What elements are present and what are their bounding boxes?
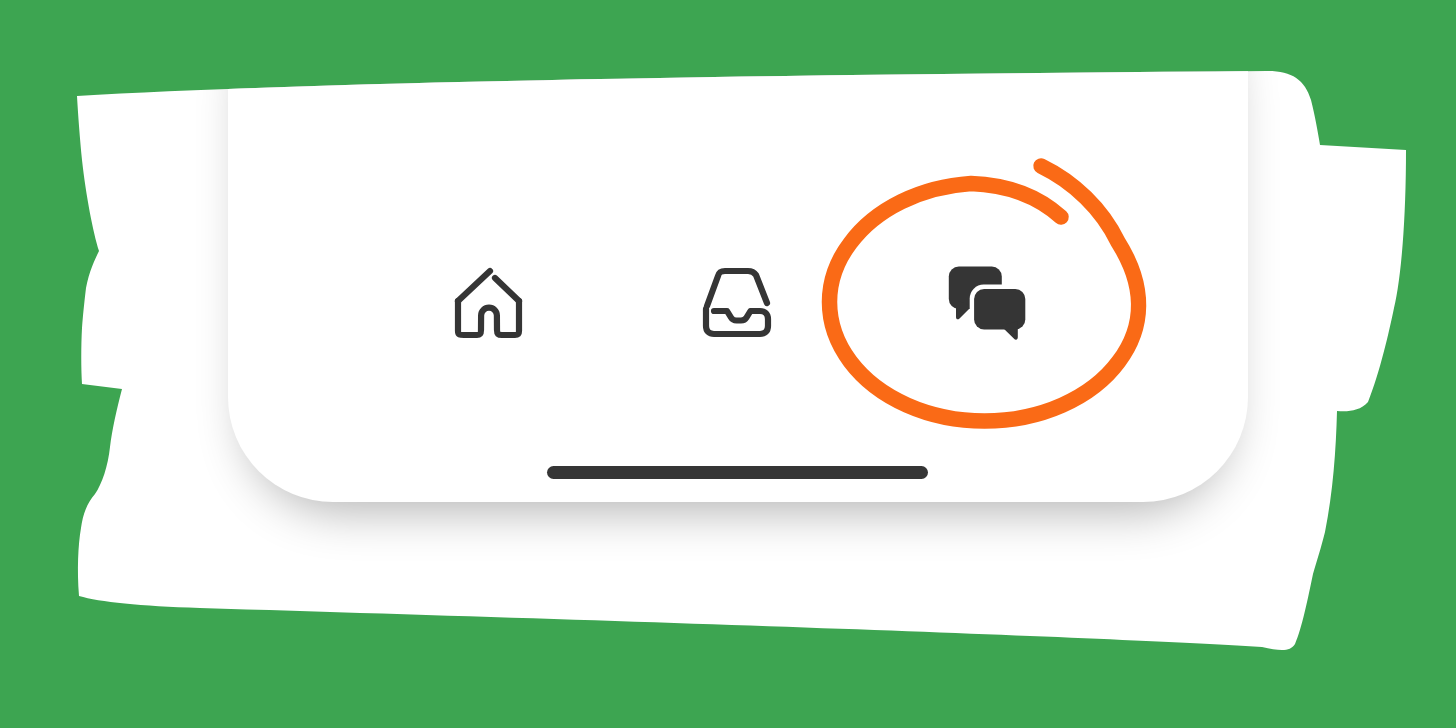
button[interactable]: Inbox: [682, 248, 792, 358]
button[interactable]: Home: [433, 248, 543, 358]
button[interactable]: Messages: [932, 248, 1042, 358]
